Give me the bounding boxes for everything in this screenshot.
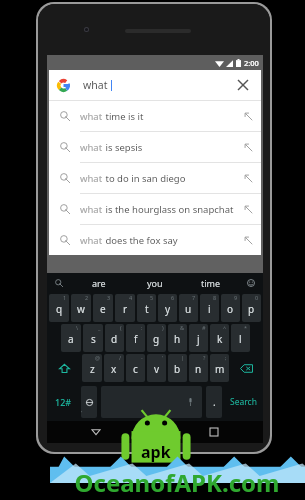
staticText: 1 <box>63 294 67 301</box>
button[interactable]: * <box>231 324 250 352</box>
button[interactable]: 12# <box>49 385 78 419</box>
staticText: what <box>80 110 103 123</box>
button[interactable]: Search <box>225 385 261 419</box>
button[interactable]: ^ <box>210 324 229 352</box>
button[interactable]: 7 <box>179 294 198 322</box>
button[interactable]: : <box>126 324 145 352</box>
staticText: 4 <box>129 294 133 301</box>
staticText: a <box>68 332 74 346</box>
button[interactable]: 5 <box>137 294 156 322</box>
button[interactable]: 1 <box>49 294 69 322</box>
staticText: z <box>90 362 95 376</box>
button[interactable]: Search <box>47 273 71 293</box>
staticText: , <box>81 406 83 414</box>
staticText: does the fox say <box>103 234 178 247</box>
staticText: r <box>123 302 128 316</box>
button[interactable]: 6 <box>158 294 177 322</box>
staticText: 2 <box>85 294 89 301</box>
staticText: is sepsis <box>103 141 143 154</box>
button[interactable]: Emoji <box>239 273 263 293</box>
staticText: 8 <box>213 294 217 301</box>
button[interactable]: Insert suggestion <box>235 132 261 162</box>
staticText: n <box>195 362 202 376</box>
staticText: Search <box>230 396 257 408</box>
staticText: x <box>111 362 117 376</box>
staticText: f <box>134 332 138 346</box>
button[interactable]: Insert suggestion <box>235 101 261 131</box>
button[interactable]: & <box>168 324 187 352</box>
button[interactable]: Insert suggestion <box>235 163 261 193</box>
staticText: t <box>145 302 149 316</box>
staticText: ^ <box>223 324 227 331</box>
button[interactable]: / <box>104 354 124 382</box>
button[interactable]: what <box>49 163 261 193</box>
staticText: / <box>119 354 122 361</box>
staticText: what <box>80 203 103 216</box>
button[interactable]: Home <box>145 422 165 442</box>
button[interactable]: Recent apps <box>204 422 224 442</box>
staticText: 5 <box>150 294 154 301</box>
button[interactable]: 9 <box>221 294 240 322</box>
button[interactable]: what <box>49 225 261 255</box>
button[interactable]: ? <box>189 354 208 382</box>
button[interactable]: ; <box>210 354 229 382</box>
button[interactable]: 0 <box>242 294 261 322</box>
button[interactable]: what <box>49 132 261 162</box>
staticText: . <box>213 395 216 409</box>
staticText: OceanofAPK.com <box>52 466 302 499</box>
button[interactable]: 4 <box>115 294 135 322</box>
button[interactable]: ( <box>105 324 124 352</box>
staticText: \ <box>76 324 79 331</box>
button[interactable]: what <box>49 70 261 100</box>
staticText: apk <box>141 441 171 463</box>
button[interactable]: Insert suggestion <box>235 194 261 224</box>
staticText: b <box>174 362 181 376</box>
staticText: ? <box>203 354 206 361</box>
staticText: | <box>181 354 185 361</box>
staticText: @ <box>95 354 100 361</box>
staticText: i <box>208 302 211 316</box>
button[interactable]: what <box>49 101 261 131</box>
button[interactable]: time <box>183 273 239 293</box>
button[interactable]: Back <box>86 422 106 442</box>
button[interactable]: 2 <box>71 294 91 322</box>
staticText: w <box>77 302 85 316</box>
staticText: j <box>197 332 200 346</box>
button[interactable]: Backspace <box>231 354 261 382</box>
staticText: 2:00 <box>244 58 259 68</box>
button[interactable]: 8 <box>200 294 219 322</box>
staticText: ; <box>225 354 227 361</box>
staticText: e <box>100 302 106 316</box>
button[interactable]: Language <box>81 386 97 418</box>
staticText: is the hourglass on snapchat <box>103 203 234 216</box>
button[interactable]: Space <box>101 386 202 418</box>
button[interactable]: . <box>206 386 222 418</box>
button[interactable]: Insert suggestion <box>235 225 261 255</box>
button[interactable]: what <box>49 194 261 224</box>
button[interactable]: are <box>71 273 127 293</box>
button[interactable]: ) <box>147 324 166 352</box>
button[interactable]: - <box>126 354 145 382</box>
staticText: _ <box>98 324 101 331</box>
button[interactable]: @ <box>82 354 102 382</box>
staticText: - <box>141 354 143 361</box>
staticText: are <box>92 277 106 289</box>
button[interactable]: \ <box>61 324 81 352</box>
button[interactable]: # <box>189 324 208 352</box>
button[interactable]: Clear <box>233 75 253 95</box>
button[interactable]: ' <box>147 354 166 382</box>
staticText: y <box>165 302 171 316</box>
staticText: v <box>154 362 160 376</box>
button[interactable]: | <box>168 354 187 382</box>
staticText: 7 <box>192 294 196 301</box>
staticText: q <box>56 302 63 316</box>
button[interactable]: 3 <box>93 294 113 322</box>
staticText: time is it <box>103 110 144 123</box>
staticText: you <box>147 277 163 289</box>
button[interactable]: Shift <box>49 354 80 382</box>
staticText: ( <box>120 324 122 331</box>
button[interactable]: _ <box>83 324 103 352</box>
button[interactable]: you <box>127 273 183 293</box>
staticText: ' <box>162 354 164 361</box>
staticText: c <box>133 362 138 376</box>
